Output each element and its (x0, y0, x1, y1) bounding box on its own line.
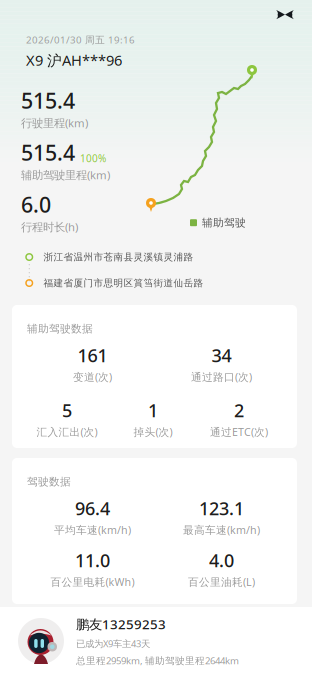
staticText: X9 沪AH***96 (26, 50, 122, 70)
staticText: 辅助驾驶 (202, 216, 246, 229)
staticText: 福建省厦门市思明区篔筜街道仙岳路 (43, 277, 203, 289)
staticText: 96.4 (75, 496, 110, 520)
button[interactable]: 鹏友13259253 (18, 615, 298, 667)
staticText: 2026/01/30 周五 19:16 (26, 33, 135, 46)
staticText: 2 (234, 398, 244, 422)
staticText: 百公里油耗(L) (188, 574, 255, 589)
button[interactable]: XPeng (270, 4, 300, 26)
staticText: 515.4 (21, 86, 75, 115)
staticText: 1 (148, 398, 158, 422)
staticText: 百公里电耗(kWh) (50, 574, 134, 589)
staticText: 最高车速(km/h) (183, 522, 260, 537)
staticText: 100% (80, 151, 106, 165)
staticText: 总里程2959km, 辅助驾驶里程2644km (76, 654, 239, 667)
staticText: 行程时长(h) (21, 219, 78, 234)
staticText: 汇入汇出(次) (36, 424, 97, 439)
staticText: 5 (62, 398, 72, 422)
staticText: 通过路口(次) (191, 369, 252, 384)
staticText: 掉头(次) (133, 424, 172, 439)
staticText: 6.0 (21, 190, 51, 219)
staticText: 123.1 (199, 496, 244, 520)
staticText: 161 (77, 343, 107, 367)
staticText: 平均车速(km/h) (54, 522, 131, 537)
staticText: 4.0 (209, 548, 234, 572)
staticText: 驾驶数据 (27, 475, 71, 488)
staticText: 变道(次) (73, 369, 112, 384)
staticText: 515.4 (21, 138, 75, 167)
staticText: 辅助驾驶里程(km) (21, 167, 110, 182)
staticText: 辅助驾驶数据 (27, 322, 93, 335)
staticText: 11.0 (75, 548, 110, 572)
staticText: 已成为X9车主43天 (76, 637, 150, 650)
staticText: 浙江省温州市苍南县灵溪镇灵浦路 (43, 251, 193, 263)
staticText: 34 (211, 343, 231, 367)
staticText: 行驶里程(km) (21, 115, 88, 130)
staticText: 鹏友13259253 (76, 615, 166, 633)
staticText: 通过ETC(次) (210, 424, 268, 439)
